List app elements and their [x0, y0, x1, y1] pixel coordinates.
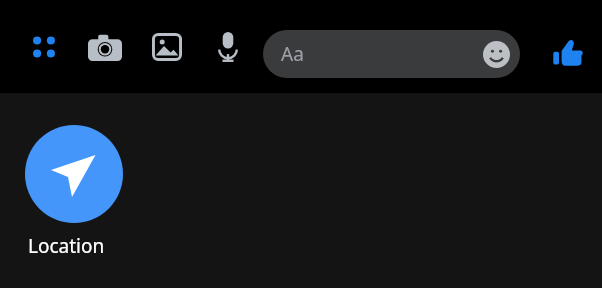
button[interactable]: Location — [10, 125, 138, 259]
button[interactable]: Aa — [263, 30, 520, 78]
staticText: Location — [28, 233, 105, 259]
button[interactable]: Gallery — [144, 32, 190, 62]
button[interactable]: More apps — [20, 32, 68, 62]
staticText: Aa — [281, 41, 304, 67]
button[interactable]: Send thumbs up — [545, 30, 591, 76]
button[interactable]: Voice message — [206, 30, 250, 64]
button[interactable]: Camera — [82, 32, 128, 62]
